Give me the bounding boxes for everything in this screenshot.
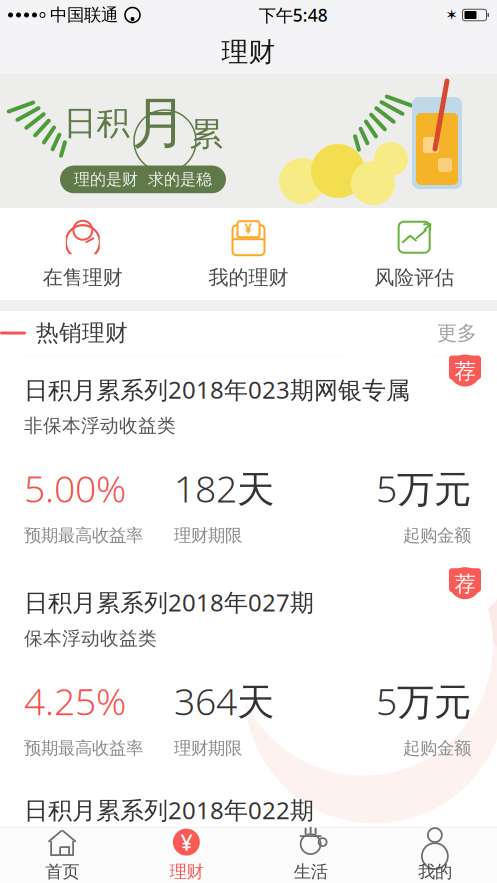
staticText: 非保本浮动收益类 — [24, 835, 176, 858]
staticText: 累 — [189, 114, 222, 155]
staticText: 日积月累系列2018年027期 — [24, 586, 314, 618]
staticText: 日积月累系列2018年023期网银专属 — [24, 373, 410, 405]
staticText: ¥ — [180, 828, 192, 856]
button[interactable]: 日积月累系列2018年022期 — [0, 776, 497, 858]
staticText: 在售理财 — [43, 265, 123, 290]
button[interactable]: 首页 — [0, 822, 124, 883]
staticText: 5.00% — [24, 463, 126, 513]
staticText: 我的理财 — [208, 265, 288, 290]
button[interactable]: 风险评估 — [331, 202, 497, 306]
button[interactable]: 我的 — [373, 822, 497, 883]
staticText: 荐 — [454, 358, 475, 385]
button[interactable]: 日积月累系列2018年023期网银专属 — [0, 355, 497, 568]
staticText: 理财期限 — [174, 737, 242, 759]
staticText: 理的是财 求的是稳 — [74, 170, 212, 189]
staticText: ¥ — [244, 219, 252, 237]
staticText: 首页 — [45, 861, 79, 882]
staticText: 预期最高收益率 — [24, 525, 143, 546]
staticText: 4.25% — [24, 676, 126, 726]
staticText: 保本浮动收益类 — [24, 627, 157, 650]
staticText: 182天 — [174, 463, 274, 513]
staticText: 日积月累系列2018年022期 — [24, 794, 314, 826]
button[interactable]: ¥ — [124, 822, 248, 883]
staticText: 非保本浮动收益类 — [24, 414, 176, 437]
staticText: 我的 — [418, 861, 452, 882]
staticText: 起购金额 — [403, 525, 471, 546]
staticText: 中国联通 — [50, 4, 118, 26]
staticText: 理财 — [221, 36, 275, 68]
button[interactable]: ¥ — [166, 202, 331, 306]
button[interactable]: 更多 — [421, 315, 477, 351]
button[interactable]: 生活 — [248, 822, 373, 883]
staticText: 理财期限 — [174, 525, 242, 546]
button[interactable]: 日积月累系列2018年027期 — [0, 568, 497, 781]
staticText: 下午5:48 — [259, 3, 328, 26]
staticText: 5万元 — [376, 463, 471, 513]
staticText: 生活 — [294, 861, 328, 882]
staticText: 理财 — [169, 861, 203, 882]
staticText: 荐 — [454, 571, 475, 597]
staticText: 预期最高收益率 — [24, 737, 143, 759]
staticText: 更多 — [437, 321, 477, 345]
staticText: 364天 — [174, 676, 274, 726]
staticText: ✶ — [445, 7, 457, 23]
button[interactable]: 在售理财 — [0, 202, 166, 306]
staticText: 热销理财 — [36, 319, 128, 347]
staticText: 月 — [131, 89, 187, 158]
staticText: 日积 — [63, 103, 129, 144]
staticText: 起购金额 — [403, 737, 471, 759]
staticText: 5万元 — [376, 676, 471, 726]
staticText: 风险评估 — [374, 265, 454, 290]
